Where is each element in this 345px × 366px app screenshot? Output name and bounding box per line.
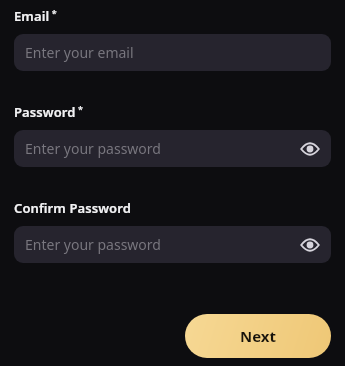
staticText: Enter your password bbox=[25, 139, 161, 158]
button[interactable]: Enter your password bbox=[14, 130, 331, 167]
staticText: Email * bbox=[14, 7, 57, 25]
staticText: Enter your email bbox=[25, 43, 134, 62]
staticText: Confirm Password bbox=[14, 199, 131, 217]
button[interactable]: Show confirm password bbox=[296, 231, 324, 259]
button[interactable]: Enter your email bbox=[14, 34, 331, 71]
staticText: Next bbox=[240, 326, 277, 346]
staticText: Password * bbox=[14, 103, 84, 121]
button[interactable]: Show password bbox=[296, 135, 324, 163]
staticText: Enter your password bbox=[25, 235, 161, 254]
button[interactable]: Enter your password bbox=[14, 226, 331, 263]
button[interactable]: Next bbox=[185, 314, 331, 358]
